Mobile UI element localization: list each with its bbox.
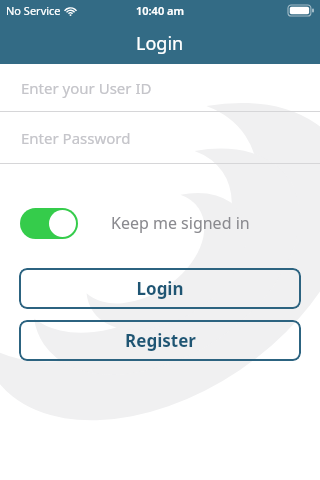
staticText: Keep me signed in [111,212,250,234]
staticText: Register [125,329,196,352]
button[interactable]: Login [19,268,301,309]
button[interactable]: Keep me signed in toggle [20,208,78,239]
button[interactable]: Enter Password [0,112,320,163]
button[interactable]: Register [19,320,301,361]
staticText: No Service [6,3,61,18]
staticText: Login [136,31,184,56]
staticText: Enter Password [21,128,131,148]
staticText: 10:40 am [136,3,185,18]
staticText: Login [136,277,184,300]
button[interactable]: Enter your User ID [0,64,320,111]
staticText: Enter your User ID [21,78,152,98]
